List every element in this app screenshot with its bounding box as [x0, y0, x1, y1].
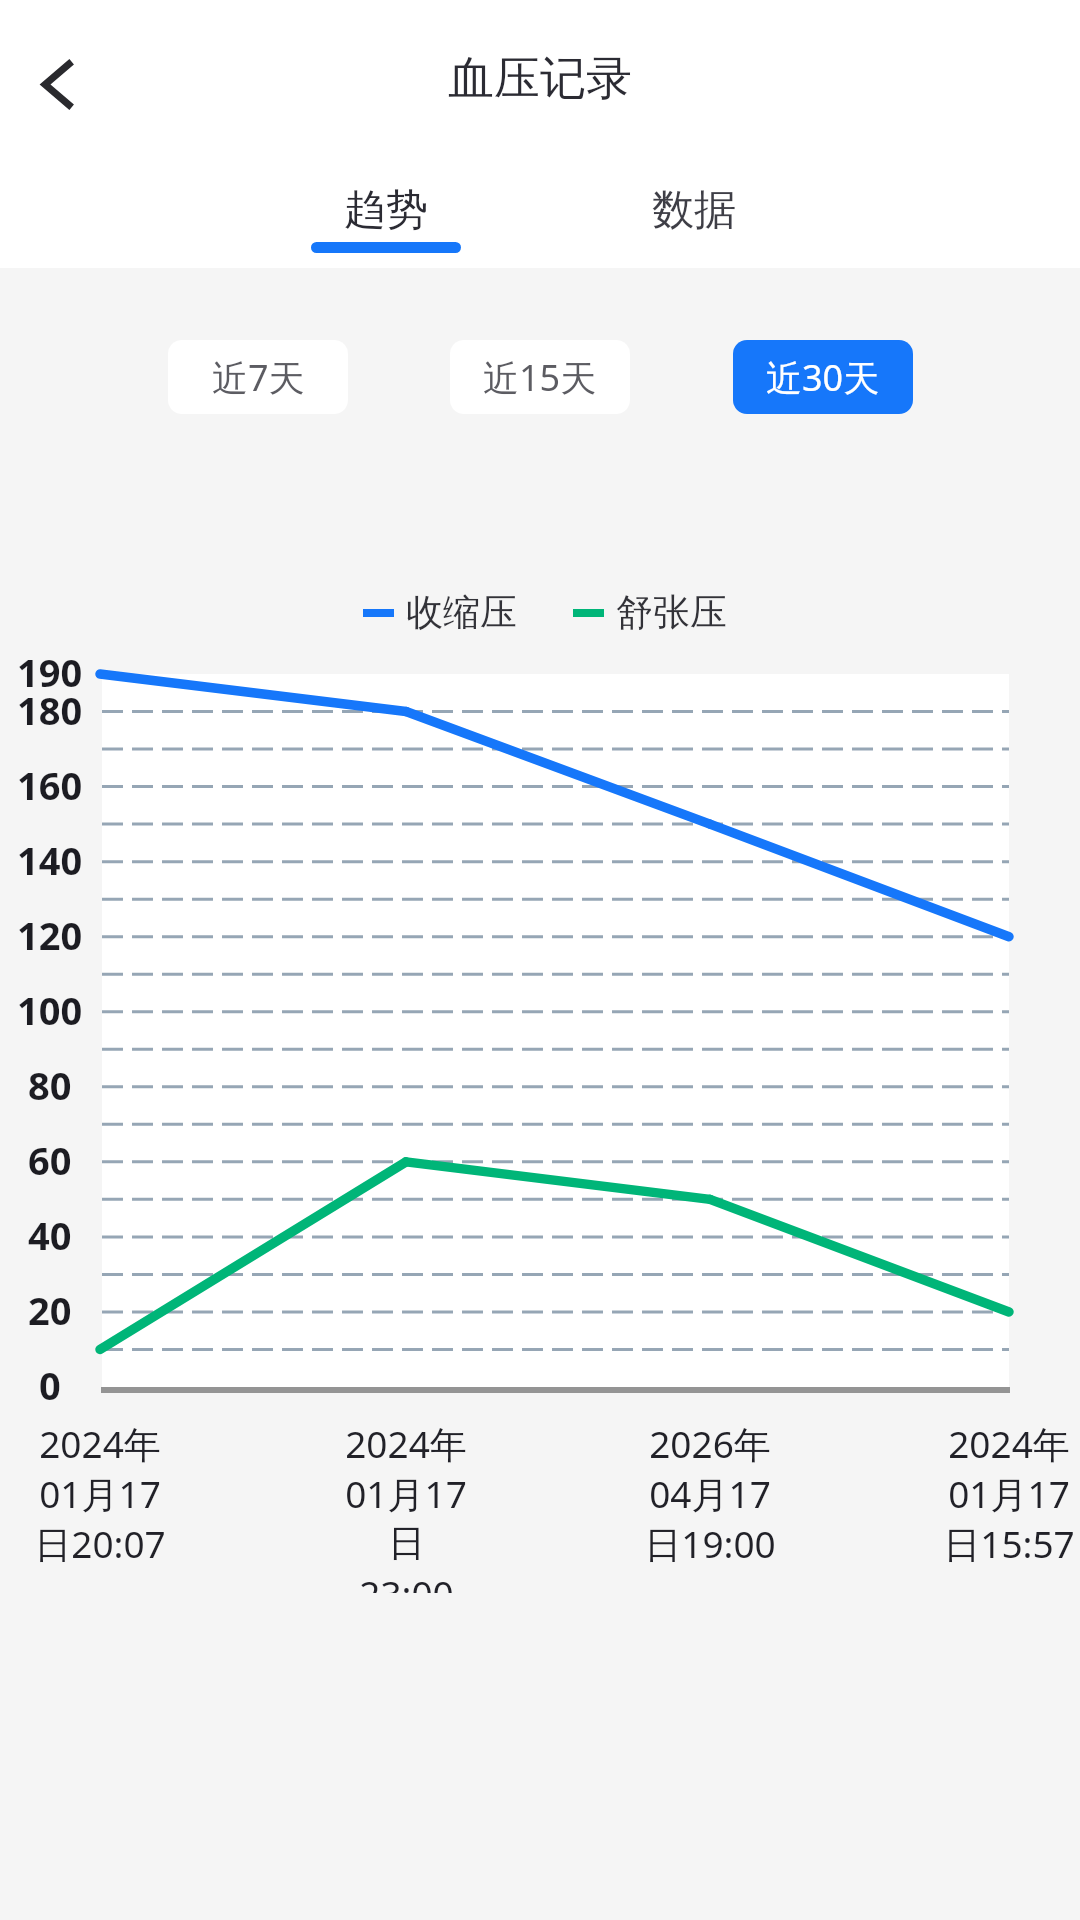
staticText: 2024年	[345, 1418, 467, 1468]
staticText: 2024年	[948, 1418, 1070, 1468]
staticText: 01月17	[345, 1468, 467, 1518]
staticText: 近7天	[212, 353, 305, 402]
button[interactable]: 趋势	[296, 184, 476, 268]
button[interactable]: 数据	[604, 184, 784, 268]
staticText: 60	[28, 1134, 72, 1186]
staticText: 01月17	[948, 1468, 1070, 1518]
button[interactable]: 近30天	[733, 340, 913, 414]
staticText: 日	[388, 1520, 425, 1567]
staticText: 数据	[652, 184, 736, 237]
staticText: 01月17	[39, 1468, 161, 1518]
button[interactable]: 近7天	[168, 340, 348, 414]
staticText: 23:00	[359, 1568, 454, 1593]
staticText: 舒张压	[616, 589, 727, 636]
staticText: 40	[28, 1209, 72, 1261]
staticText: 日19:00	[644, 1518, 776, 1568]
staticText: 04月17	[649, 1468, 771, 1518]
staticText: 120	[17, 909, 83, 961]
staticText: 140	[17, 834, 83, 886]
staticText: 2024年	[39, 1418, 161, 1468]
staticText: 190	[17, 646, 83, 698]
staticText: 趋势	[344, 184, 428, 237]
staticText: 近15天	[483, 353, 597, 402]
staticText: 20	[28, 1284, 72, 1336]
button[interactable]: Back	[28, 55, 88, 115]
staticText: 收缩压	[406, 589, 517, 636]
button[interactable]: 近15天	[450, 340, 630, 414]
staticText: 160	[17, 759, 83, 811]
staticText: 100	[17, 984, 83, 1036]
staticText: 2026年	[649, 1418, 771, 1468]
staticText: 血压记录	[448, 50, 632, 108]
staticText: 日15:57	[943, 1518, 1075, 1568]
staticText: 80	[28, 1059, 72, 1111]
staticText: 0	[39, 1359, 61, 1411]
staticText: 近30天	[766, 353, 880, 402]
staticText: 180	[17, 684, 83, 736]
staticText: 日20:07	[34, 1518, 166, 1568]
